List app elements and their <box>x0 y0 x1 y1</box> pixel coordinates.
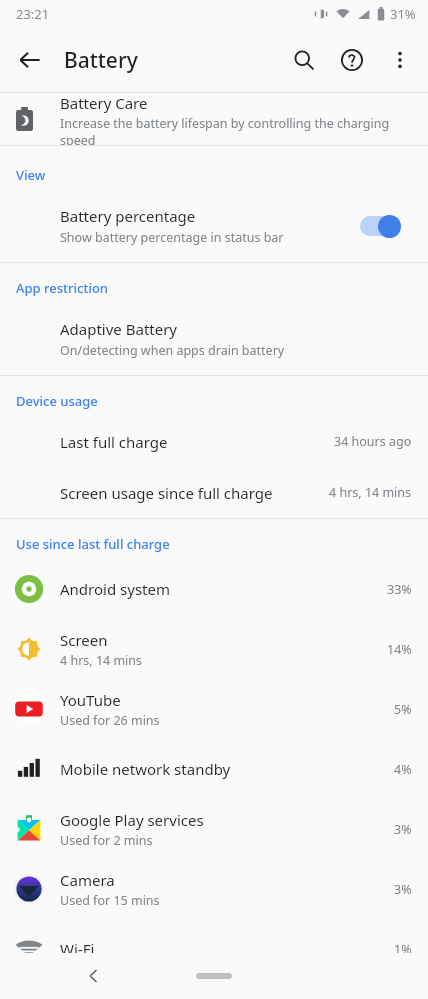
staticText: Screen <box>60 630 108 650</box>
staticText: Battery <box>64 46 138 75</box>
button[interactable]: Battery percentage <box>0 190 428 262</box>
button[interactable]: Netflix <box>0 979 428 999</box>
staticText: Used for 15 mins <box>60 892 160 909</box>
staticText: Battery Care <box>60 93 148 113</box>
staticText: Wi-Fi <box>60 939 95 959</box>
staticText: Increase the battery lifespan by control… <box>60 115 412 145</box>
staticText: YouTube <box>60 690 121 710</box>
staticText: 4 hrs, 14 mins <box>60 652 143 669</box>
button[interactable]: Camera <box>0 859 428 919</box>
staticText: Battery percentage <box>60 206 196 226</box>
button[interactable]: Help <box>328 36 376 84</box>
staticText: 14% <box>387 641 412 658</box>
staticText: 5% <box>394 701 412 718</box>
staticText: 34 hours ago <box>334 433 412 450</box>
button[interactable]: More options <box>376 36 424 84</box>
button[interactable]: YouTube <box>0 679 428 739</box>
button[interactable]: Home <box>196 973 232 979</box>
staticText: Mobile network standby <box>60 759 231 779</box>
staticText: App restriction <box>16 279 108 297</box>
staticText: 4 hrs, 14 mins <box>329 484 412 501</box>
button[interactable]: Adaptive Battery <box>0 303 428 375</box>
staticText: Netflix <box>60 979 107 999</box>
button[interactable]: Mobile network standby <box>0 739 428 799</box>
button[interactable]: Screen <box>0 619 428 679</box>
button[interactable]: Wi-Fi <box>0 919 428 979</box>
staticText: 33% <box>387 581 412 598</box>
staticText: 23:21 <box>16 5 50 23</box>
button[interactable]: Battery Care <box>0 93 428 145</box>
button[interactable]: Screen usage since full charge <box>0 467 428 518</box>
staticText: View <box>16 166 46 184</box>
staticText: Android system <box>60 579 170 599</box>
staticText: 4% <box>394 761 412 778</box>
staticText: 3% <box>394 821 412 838</box>
button[interactable]: Search <box>280 36 328 84</box>
staticText: Screen usage since full charge <box>60 483 329 503</box>
staticText: Used for 2 mins <box>60 832 153 849</box>
button[interactable]: Back <box>6 36 54 84</box>
staticText: 31% <box>390 5 416 23</box>
staticText: Camera <box>60 870 115 890</box>
staticText: Device usage <box>16 392 98 410</box>
staticText: Last full charge <box>60 432 334 452</box>
staticText: Use since last full charge <box>16 535 170 553</box>
button[interactable]: Last full charge <box>0 416 428 467</box>
staticText: Adaptive Battery <box>60 319 178 339</box>
staticText: Used for 26 mins <box>60 712 160 729</box>
button[interactable] <box>358 210 410 242</box>
button[interactable]: Android system <box>0 559 428 619</box>
staticText: Google Play services <box>60 810 204 830</box>
button[interactable]: Google Play services <box>0 799 428 859</box>
staticText: Show battery percentage in status bar <box>60 229 284 246</box>
button[interactable]: Back <box>74 956 114 996</box>
staticText: On/detecting when apps drain battery <box>60 342 285 359</box>
staticText: 1% <box>394 941 412 958</box>
staticText: 3% <box>394 881 412 898</box>
